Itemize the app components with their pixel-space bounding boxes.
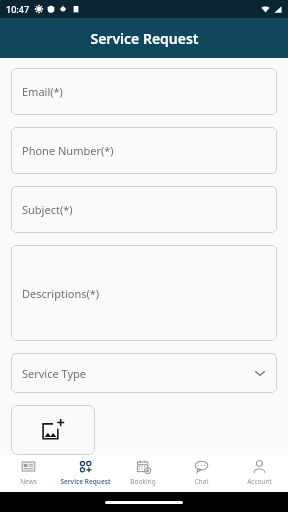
staticText: News (20, 477, 37, 486)
staticText: Booking (130, 477, 156, 486)
button[interactable]: Account (230, 455, 288, 492)
staticText: Service Request (60, 477, 111, 486)
staticText: Chat (194, 477, 209, 486)
button[interactable]: Service Type (11, 353, 277, 393)
button[interactable]: Booking (114, 455, 172, 492)
button[interactable]: Service Request (57, 455, 114, 492)
staticText: Phone Number(*) (22, 143, 114, 158)
button[interactable]: Chat (172, 455, 230, 492)
button[interactable]: News (0, 455, 57, 492)
staticText: Account (247, 477, 272, 486)
button[interactable]: Descriptions(*) (11, 245, 277, 341)
staticText: Descriptions(*) (22, 286, 100, 301)
staticText: Service Type (22, 366, 87, 381)
button[interactable]: Add image (11, 405, 95, 455)
staticText: Subject(*) (22, 202, 73, 217)
staticText: Service Request (90, 29, 199, 48)
staticText: Email(*) (22, 84, 63, 99)
button[interactable]: Phone Number(*) (11, 127, 277, 174)
button[interactable]: Subject(*) (11, 186, 277, 233)
button[interactable]: Email(*) (11, 68, 277, 115)
staticText: 10:47 (6, 3, 30, 15)
